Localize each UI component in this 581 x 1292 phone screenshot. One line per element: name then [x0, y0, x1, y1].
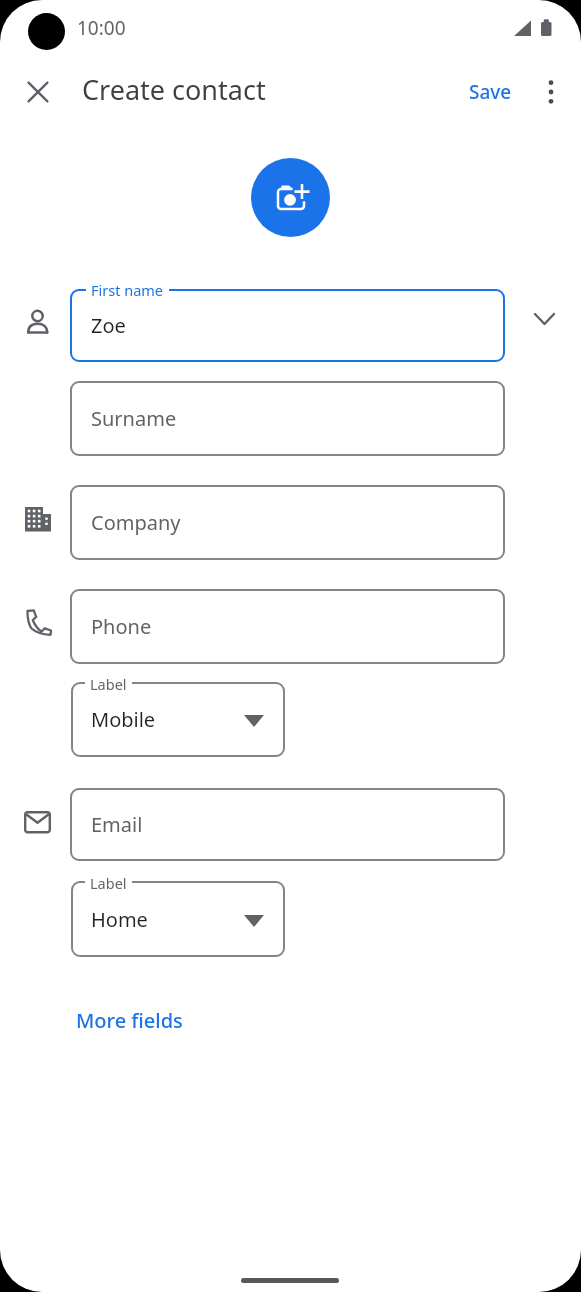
- staticText: Label: [90, 873, 127, 893]
- staticText: Home: [91, 906, 148, 933]
- staticText: Mobile: [91, 706, 156, 733]
- button[interactable]: Phone: [70, 589, 505, 664]
- staticText: First name: [91, 280, 164, 300]
- staticText: Phone: [91, 613, 152, 640]
- button[interactable]: Save: [455, 74, 525, 110]
- button[interactable]: Zoe: [70, 289, 505, 362]
- staticText: Create contact: [82, 71, 266, 103]
- button[interactable]: [251, 158, 330, 237]
- staticText: Surname: [91, 405, 177, 432]
- button[interactable]: Mobile: [71, 682, 285, 757]
- button[interactable]: Surname: [70, 381, 505, 456]
- staticText: More fields: [76, 1007, 183, 1034]
- button[interactable]: More fields: [76, 999, 206, 1041]
- button[interactable]: [533, 74, 569, 110]
- button[interactable]: Company: [70, 485, 505, 560]
- button[interactable]: Email: [70, 788, 505, 861]
- button[interactable]: Home: [71, 881, 285, 957]
- staticText: Company: [91, 509, 181, 536]
- staticText: Label: [90, 674, 127, 694]
- staticText: Email: [91, 811, 143, 838]
- staticText: 10:00: [77, 15, 126, 39]
- button[interactable]: [18, 72, 57, 111]
- staticText: Zoe: [91, 312, 126, 339]
- button[interactable]: [520, 297, 568, 341]
- staticText: Save: [469, 79, 512, 105]
